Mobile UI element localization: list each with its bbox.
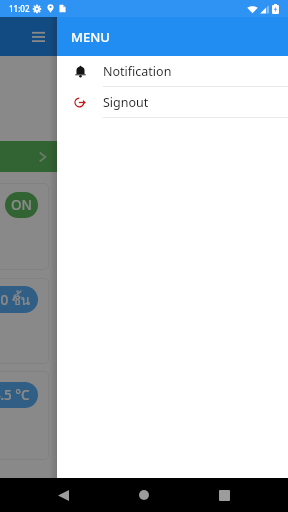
staticText: Signout [103, 94, 149, 111]
button[interactable] [0, 141, 288, 172]
button[interactable]: ON [0, 183, 49, 270]
staticText: 100 ชิ้น [0, 289, 31, 310]
button[interactable]: Open navigation menu [27, 25, 50, 48]
button[interactable]: Recent apps [207, 478, 241, 512]
button[interactable]: Notification [57, 56, 288, 87]
staticText: 24.5 °C [0, 386, 30, 404]
staticText: ON [11, 196, 33, 214]
button[interactable]: Back [46, 478, 80, 512]
button[interactable]: 100 ชิ้น [0, 278, 49, 364]
button[interactable]: 24.5 °C [0, 371, 49, 460]
button[interactable]: Signout [57, 87, 288, 118]
button[interactable]: Home [127, 478, 161, 512]
staticText: 11:02 [9, 3, 30, 14]
staticText: Notification [103, 63, 172, 80]
staticText: MENU [71, 28, 110, 46]
